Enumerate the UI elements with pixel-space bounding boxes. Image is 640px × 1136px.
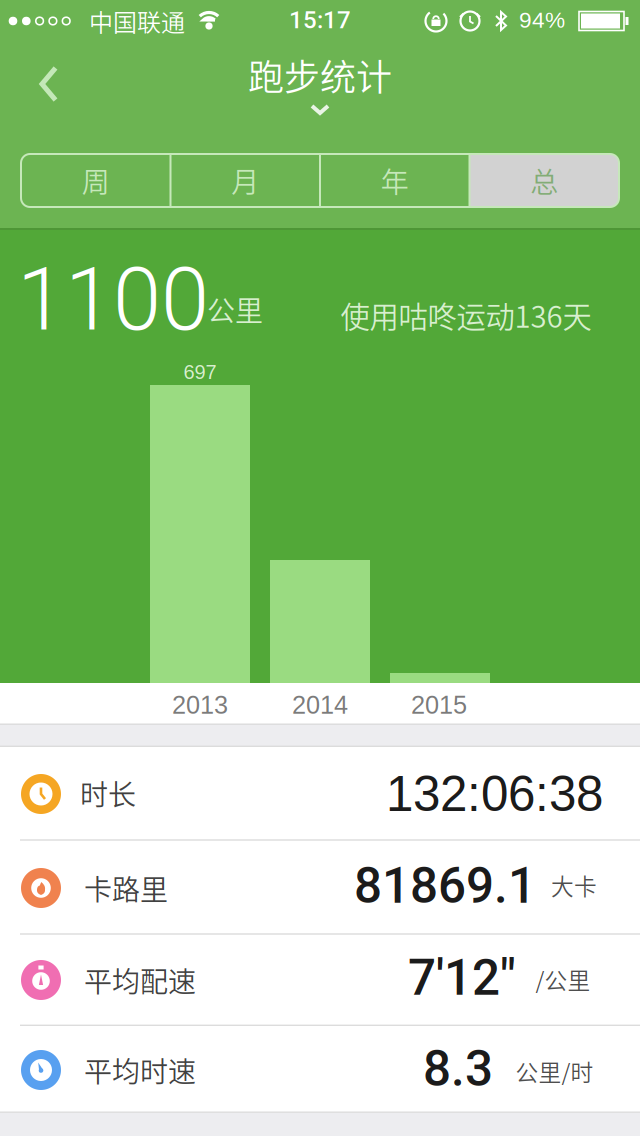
staticText: 2015 (411, 691, 467, 719)
staticText: 7'12" (408, 949, 516, 1007)
staticText: 月 (231, 160, 259, 201)
staticText: 2014 (292, 691, 348, 719)
staticText: 中国联通 (89, 4, 185, 38)
staticText: 15:17 (289, 6, 351, 34)
staticText: 81869.1 (354, 857, 536, 915)
staticText: 大卡 (551, 869, 597, 901)
staticText: 周 (82, 160, 110, 201)
staticText: 平均配速 (84, 960, 196, 1000)
staticText: 1100 (17, 249, 209, 351)
button[interactable]: 月 (0, 0, 640, 1136)
button[interactable]: 周 (0, 0, 640, 1136)
staticText: 132:06:38 (386, 766, 603, 821)
staticText: 年 (381, 160, 409, 201)
button[interactable]: 年 (0, 0, 640, 1136)
staticText: 公里 (207, 289, 263, 329)
staticText: 8.3 (423, 1040, 493, 1098)
staticText: 卡路里 (84, 868, 168, 908)
staticText: 94% (519, 7, 565, 33)
staticText: 公里/时 (515, 1055, 593, 1087)
staticText: 697 (183, 361, 216, 383)
staticText: 使用咕咚运动136天 (340, 294, 591, 336)
staticText: 总 (530, 160, 558, 201)
staticText: /公里 (535, 963, 590, 995)
staticText: 平均时速 (84, 1050, 196, 1090)
button[interactable]: Back (0, 0, 90, 120)
staticText: 2013 (172, 691, 228, 719)
staticText: 跑步统计 (248, 49, 392, 101)
button[interactable]: 跑步统计 (0, 0, 640, 130)
staticText: 时长 (80, 773, 136, 813)
button[interactable]: 总 (0, 0, 640, 1136)
